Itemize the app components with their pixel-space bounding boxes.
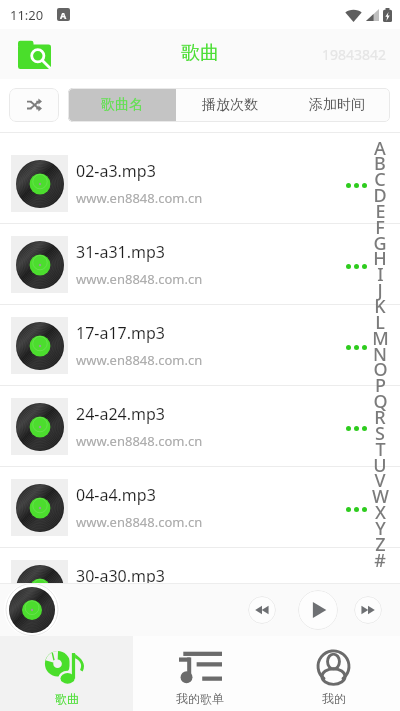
staticText: I	[377, 262, 384, 287]
staticText: K	[374, 294, 386, 319]
staticText: R	[374, 405, 386, 430]
button[interactable]: Previous	[248, 596, 276, 624]
staticText: E	[375, 199, 386, 224]
button[interactable]: 我的歌单	[133, 636, 266, 711]
staticText: X	[375, 500, 386, 525]
button[interactable]: 04-a4.mp3	[0, 467, 400, 547]
button[interactable]: 歌曲	[0, 636, 133, 711]
staticText: W	[372, 484, 389, 509]
staticText: N	[373, 342, 387, 367]
staticText: J	[377, 278, 383, 303]
staticText: 播放次数	[202, 96, 258, 114]
button[interactable]: More options	[334, 548, 378, 628]
staticText: 我的歌单	[176, 691, 224, 706]
button[interactable]: 歌曲名	[68, 88, 176, 122]
staticText: P	[375, 373, 386, 398]
staticText: 24-a24.mp3	[76, 403, 165, 425]
staticText: 我的	[322, 691, 346, 706]
staticText: Q	[373, 389, 388, 414]
staticText: S	[375, 421, 385, 446]
staticText: D	[373, 183, 387, 208]
staticText: 11:20	[10, 6, 44, 24]
staticText: Z	[375, 532, 386, 557]
staticText: A	[374, 136, 386, 161]
staticText: 17-a17.mp3	[76, 322, 165, 344]
staticText: Y	[375, 516, 386, 541]
button[interactable]: Shuffle	[9, 88, 59, 122]
staticText: 30-a30.mp3	[76, 565, 165, 587]
staticText: 添加时间	[309, 96, 365, 114]
staticText: U	[373, 453, 387, 478]
staticText: O	[373, 357, 388, 382]
staticText: C	[374, 167, 386, 192]
button[interactable]: Play	[298, 590, 338, 630]
staticText: G	[373, 231, 387, 256]
button[interactable]: 我的	[266, 636, 400, 711]
staticText: 歌曲	[181, 41, 219, 65]
button[interactable]: Next	[354, 596, 382, 624]
staticText: M	[372, 326, 389, 351]
staticText: A	[60, 9, 67, 21]
button[interactable]: Alphabet index	[374, 133, 400, 711]
staticText: F	[375, 215, 385, 240]
button[interactable]: Search	[18, 39, 51, 69]
button[interactable]: More options	[334, 467, 378, 547]
button[interactable]: 31-a31.mp3	[0, 224, 400, 304]
staticText: 04-a4.mp3	[76, 484, 156, 506]
staticText: #	[374, 548, 386, 573]
button[interactable]: 02-a3.mp3	[0, 143, 400, 223]
button[interactable]: 播放次数	[176, 88, 283, 122]
button[interactable]: 24-a24.mp3	[0, 386, 400, 466]
button[interactable]: 30-a30.mp3	[0, 548, 400, 628]
staticText: 歌曲名	[101, 96, 143, 114]
button[interactable]: Now playing	[4, 583, 60, 636]
staticText: T	[375, 437, 386, 462]
button[interactable]: 17-a17.mp3	[0, 305, 400, 385]
staticText: H	[373, 246, 387, 271]
staticText: www.en8848.com.cn	[76, 432, 203, 450]
button[interactable]: More options	[334, 224, 378, 304]
button[interactable]: More options	[334, 305, 378, 385]
staticText: www.en8848.com.cn	[76, 270, 203, 288]
button[interactable]: More options	[334, 143, 378, 223]
button[interactable]: 添加时间	[283, 88, 390, 122]
staticText: www.en8848.com.cn	[76, 513, 203, 531]
staticText: 02-a3.mp3	[76, 160, 156, 182]
button[interactable]: More options	[334, 386, 378, 466]
staticText: 19843842	[322, 45, 387, 64]
staticText: www.en8848.com.cn	[76, 351, 203, 369]
staticText: www.en8848.com.cn	[76, 189, 203, 207]
staticText: 31-a31.mp3	[76, 241, 165, 263]
staticText: 歌曲	[55, 691, 79, 706]
staticText: L	[375, 310, 385, 335]
staticText: B	[374, 151, 386, 176]
staticText: V	[374, 468, 386, 493]
